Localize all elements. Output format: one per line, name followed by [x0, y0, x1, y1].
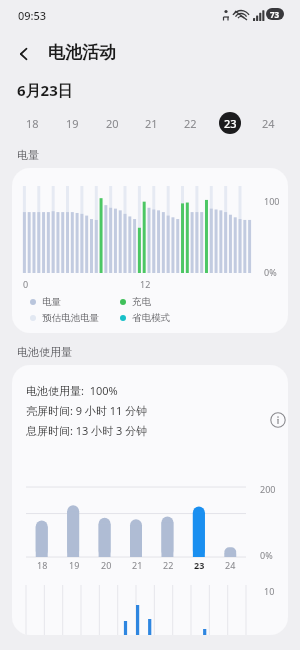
staticText: 200	[260, 483, 276, 495]
button[interactable]: 24	[249, 106, 288, 140]
staticText: 电池使用量: 100%	[26, 383, 118, 398]
staticText: 10	[264, 585, 275, 597]
staticText: 22	[184, 116, 197, 131]
staticText: 0	[23, 278, 29, 290]
staticText: 18	[37, 559, 48, 571]
staticText: 亮屏时间: 9 小时 11 分钟	[26, 403, 148, 418]
staticText: 19	[66, 116, 79, 131]
staticText: 充电	[132, 296, 151, 308]
button[interactable]: 21	[132, 106, 171, 140]
staticText: 预估电池电量	[42, 312, 99, 324]
staticText: 电池使用量	[17, 345, 72, 359]
button[interactable]: 100	[12, 168, 288, 333]
staticText: 24	[225, 559, 236, 571]
button[interactable]: 18	[12, 106, 52, 140]
staticText: 21	[132, 559, 143, 571]
staticText: 电池活动	[48, 42, 116, 63]
staticText: 23	[194, 559, 205, 571]
staticText: 73	[270, 9, 280, 20]
staticText: 23	[224, 116, 237, 131]
staticText: 21	[145, 116, 158, 131]
staticText: 12	[140, 278, 151, 290]
staticText: 09:53	[18, 8, 47, 23]
staticText: 省电模式	[132, 312, 170, 324]
staticText: 20	[106, 116, 119, 131]
staticText: 0%	[264, 266, 277, 278]
staticText: 6月23日	[17, 80, 73, 100]
staticText: 电量	[42, 296, 61, 308]
button[interactable]: 23	[210, 106, 249, 140]
button[interactable]: 电池使用量: 100%	[12, 365, 288, 635]
button[interactable]: 22	[171, 106, 210, 140]
button[interactable]: Back	[8, 38, 40, 70]
staticText: 0%	[260, 549, 273, 561]
staticText: 100	[264, 195, 280, 207]
button[interactable]: 19	[52, 106, 92, 140]
staticText: 19	[69, 559, 80, 571]
staticText: 22	[163, 559, 174, 571]
staticText: 电量	[17, 148, 39, 162]
staticText: 24	[262, 116, 275, 131]
staticText: 20	[101, 559, 112, 571]
staticText: 息屏时间: 13 小时 3 分钟	[26, 423, 148, 438]
staticText: 18	[26, 116, 39, 131]
button[interactable]: Info	[267, 409, 288, 431]
button[interactable]: 20	[92, 106, 132, 140]
